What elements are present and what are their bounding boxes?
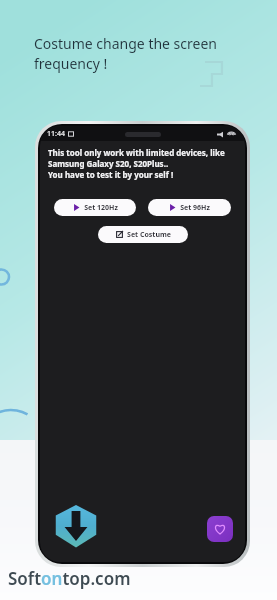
staticText: Set 96Hz: [180, 203, 210, 213]
staticText: This tool only work with limited devices…: [48, 147, 225, 180]
button[interactable]: Set 96Hz: [148, 199, 231, 216]
staticText: Costume change the screen frequency !: [34, 34, 249, 73]
button[interactable]: Favorite app: [207, 516, 233, 542]
staticText: Set Costume: [127, 230, 171, 240]
staticText: Set 120Hz: [84, 203, 118, 213]
staticText: Softontop.com: [8, 567, 131, 590]
button[interactable]: Set Costume: [98, 226, 188, 243]
staticText: 11:44: [47, 129, 65, 139]
button[interactable]: Set 120Hz: [54, 199, 136, 216]
button[interactable]: Download: [54, 504, 98, 548]
